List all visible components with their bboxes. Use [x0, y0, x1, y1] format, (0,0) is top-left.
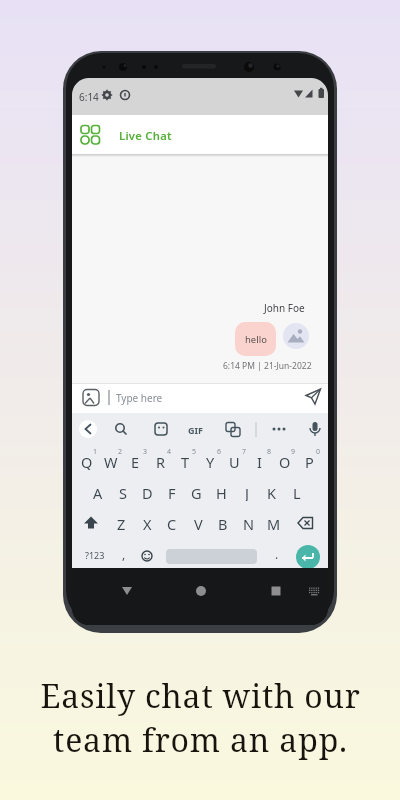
button[interactable]: N — [236, 514, 262, 532]
staticText: ?123 — [85, 549, 105, 561]
button[interactable] — [80, 511, 102, 529]
staticText: 5 — [192, 447, 197, 457]
staticText: 0 — [316, 447, 321, 457]
button[interactable]: S — [110, 483, 135, 501]
button[interactable]: D — [135, 483, 160, 501]
staticText: O — [279, 452, 291, 470]
staticText: hello — [245, 333, 267, 346]
staticText: 6:14 — [79, 90, 99, 104]
button[interactable]: A — [85, 483, 110, 501]
staticText: Live Chat — [119, 128, 172, 143]
button[interactable]: B — [210, 514, 236, 532]
staticText: S — [119, 483, 127, 501]
button[interactable] — [268, 418, 290, 440]
button[interactable]: R — [148, 452, 173, 470]
button[interactable] — [304, 418, 326, 440]
staticText: , — [122, 546, 126, 562]
button[interactable] — [184, 418, 206, 440]
button[interactable]: Z — [108, 514, 134, 532]
staticText: I — [257, 452, 262, 470]
staticText: V — [194, 514, 203, 532]
button[interactable]: M — [261, 514, 287, 532]
staticText: J — [245, 483, 249, 501]
button[interactable]: W — [98, 452, 123, 470]
staticText: H — [216, 483, 227, 501]
staticText: 8 — [267, 447, 272, 457]
staticText: U — [229, 452, 240, 470]
staticText: 6:14 PM | 21-Jun-2022 — [223, 360, 312, 372]
staticText: N — [243, 514, 255, 532]
staticText: B — [218, 514, 228, 532]
staticText: 6 — [217, 447, 222, 457]
button[interactable]: T — [173, 452, 198, 470]
staticText: E — [131, 452, 140, 470]
button[interactable] — [150, 418, 172, 440]
staticText: C — [167, 514, 177, 532]
staticText: W — [104, 452, 118, 470]
staticText: R — [156, 452, 166, 470]
button[interactable] — [302, 385, 326, 411]
button[interactable]: F — [159, 483, 184, 501]
staticText: Z — [117, 514, 126, 532]
staticText: M — [267, 514, 281, 532]
button[interactable]: P — [297, 452, 322, 470]
button[interactable] — [296, 545, 320, 569]
button[interactable] — [80, 544, 106, 564]
button[interactable] — [109, 418, 131, 440]
staticText: P — [305, 452, 314, 470]
staticText: 2 — [118, 447, 123, 457]
staticText: Y — [206, 452, 215, 470]
button[interactable] — [186, 580, 216, 602]
button[interactable] — [261, 580, 291, 602]
button[interactable]: J — [234, 483, 259, 501]
staticText: Type here — [116, 391, 163, 405]
staticText: Easily chat with our — [40, 674, 361, 718]
staticText: 4 — [167, 447, 172, 457]
button[interactable]: I — [247, 452, 272, 470]
staticText: 9 — [291, 447, 296, 457]
button[interactable]: H — [209, 483, 234, 501]
staticText: D — [142, 483, 153, 501]
button[interactable]: G — [184, 483, 209, 501]
button[interactable]: O — [272, 452, 297, 470]
button[interactable]: U — [222, 452, 247, 470]
staticText: L — [293, 483, 301, 501]
staticText: 7 — [242, 447, 247, 457]
button[interactable] — [80, 386, 103, 409]
staticText: A — [93, 483, 103, 501]
button[interactable]: hello — [235, 322, 276, 356]
staticText: GIF — [188, 424, 203, 436]
staticText: . — [275, 546, 279, 562]
button[interactable]: K — [259, 483, 284, 501]
staticText: team from an app. — [53, 718, 348, 762]
button[interactable] — [294, 511, 318, 529]
staticText: John Foe — [264, 301, 305, 315]
staticText: 1 — [93, 447, 98, 457]
staticText: X — [143, 514, 152, 532]
button[interactable] — [112, 580, 142, 602]
button[interactable] — [136, 544, 158, 564]
button[interactable] — [221, 418, 243, 440]
button[interactable]: E — [123, 452, 148, 470]
staticText: G — [191, 483, 202, 501]
staticText: 3 — [143, 447, 148, 457]
staticText: T — [181, 452, 190, 470]
button[interactable] — [77, 418, 99, 440]
button[interactable] — [106, 385, 296, 411]
button[interactable]: C — [159, 514, 185, 532]
staticText: K — [267, 483, 276, 501]
button[interactable]: X — [134, 514, 160, 532]
button[interactable]: V — [185, 514, 211, 532]
button[interactable]: L — [284, 483, 309, 501]
staticText: Q — [81, 452, 93, 470]
button[interactable]: Y — [198, 452, 223, 470]
button[interactable]: Q — [74, 452, 99, 470]
staticText: F — [168, 483, 176, 501]
